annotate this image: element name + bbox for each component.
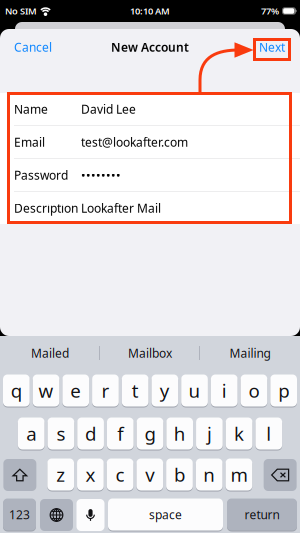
- button[interactable]: Shift: [3, 459, 36, 491]
- staticText: b: [174, 462, 185, 487]
- button[interactable]: i: [211, 374, 238, 407]
- staticText: z: [56, 462, 65, 487]
- staticText: c: [116, 462, 125, 487]
- button[interactable]: 123: [3, 498, 36, 531]
- button[interactable]: Delete: [264, 459, 297, 491]
- button[interactable]: Description: [0, 192, 300, 224]
- button[interactable]: w: [33, 374, 59, 407]
- staticText: k: [234, 421, 244, 446]
- staticText: Cancel: [14, 39, 52, 55]
- button[interactable]: m: [226, 458, 252, 491]
- staticText: t: [132, 378, 139, 403]
- staticText: space: [149, 506, 182, 522]
- button[interactable]: l: [255, 417, 282, 450]
- staticText: r: [101, 378, 109, 403]
- button[interactable]: e: [62, 374, 89, 407]
- button[interactable]: q: [3, 374, 30, 407]
- staticText: Mailing: [229, 345, 270, 361]
- button[interactable]: Name: [0, 93, 300, 125]
- staticText: No SIM: [5, 5, 37, 17]
- button[interactable]: g: [137, 417, 163, 450]
- button[interactable]: u: [181, 374, 208, 407]
- staticText: n: [203, 462, 215, 487]
- staticText: s: [56, 421, 65, 446]
- staticText: l: [266, 421, 271, 446]
- staticText: j: [207, 421, 212, 446]
- staticText: v: [145, 462, 154, 487]
- staticText: q: [11, 378, 22, 403]
- staticText: New Account: [111, 39, 189, 55]
- staticText: a: [26, 421, 36, 446]
- staticText: Email: [14, 134, 45, 150]
- button[interactable]: Dictation: [76, 499, 104, 531]
- staticText: d: [85, 421, 96, 446]
- staticText: Description: [14, 200, 78, 216]
- staticText: Password: [14, 167, 68, 183]
- staticText: y: [160, 378, 170, 403]
- button[interactable]: k: [226, 417, 252, 450]
- button[interactable]: o: [241, 374, 267, 407]
- button[interactable]: Password: [0, 159, 300, 191]
- button[interactable]: c: [107, 458, 133, 491]
- button[interactable]: s: [48, 417, 74, 450]
- staticText: 77%: [261, 5, 279, 17]
- staticText: 123: [9, 506, 30, 522]
- button[interactable]: t: [122, 374, 148, 407]
- staticText: Mailed: [31, 345, 69, 361]
- staticText: Next: [259, 39, 285, 55]
- staticText: g: [144, 421, 155, 446]
- staticText: m: [230, 462, 247, 487]
- staticText: w: [39, 378, 54, 403]
- button[interactable]: j: [196, 417, 223, 450]
- staticText: h: [174, 421, 186, 446]
- staticText: David Lee: [81, 101, 136, 117]
- staticText: Lookafter Mail: [81, 200, 161, 216]
- button[interactable]: p: [270, 374, 297, 407]
- button[interactable]: f: [107, 417, 134, 450]
- button[interactable]: h: [166, 417, 193, 450]
- staticText: u: [189, 378, 201, 403]
- staticText: return: [244, 506, 279, 522]
- staticText: e: [70, 378, 81, 403]
- staticText: 10:10 AM: [130, 5, 170, 17]
- button[interactable]: b: [166, 458, 193, 491]
- staticText: ••••••••: [81, 167, 121, 183]
- button[interactable]: Mailbox: [100, 336, 200, 370]
- button[interactable]: r: [92, 374, 119, 407]
- staticText: p: [278, 378, 289, 403]
- button[interactable]: space: [108, 498, 223, 531]
- button[interactable]: Mailing: [200, 336, 300, 370]
- button[interactable]: Email: [0, 126, 300, 158]
- button[interactable]: x: [77, 458, 104, 491]
- button[interactable]: Next: [259, 32, 300, 62]
- button[interactable]: Mailed: [0, 336, 100, 370]
- staticText: Mailbox: [128, 345, 172, 361]
- button[interactable]: a: [18, 417, 45, 450]
- button[interactable]: z: [47, 458, 74, 491]
- button[interactable]: return: [227, 498, 297, 531]
- button[interactable]: Next keyboard: [40, 499, 73, 531]
- staticText: f: [117, 421, 123, 446]
- button[interactable]: n: [196, 458, 223, 491]
- button[interactable]: v: [136, 458, 163, 491]
- button[interactable]: d: [77, 417, 104, 450]
- staticText: i: [222, 378, 227, 403]
- button[interactable]: y: [151, 374, 178, 407]
- staticText: x: [85, 462, 95, 487]
- staticText: Name: [14, 101, 48, 117]
- staticText: o: [248, 378, 259, 403]
- button[interactable]: Cancel: [0, 32, 52, 62]
- staticText: test@lookafter.com: [81, 134, 188, 150]
